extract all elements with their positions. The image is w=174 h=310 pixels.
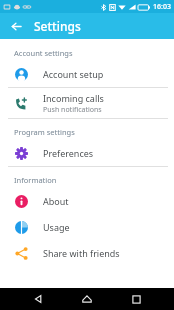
button[interactable]: Back	[6, 16, 26, 36]
button[interactable]: Back	[27, 288, 49, 310]
button[interactable]: Home	[76, 288, 98, 310]
staticText: Settings	[34, 18, 81, 34]
button[interactable]: Incoming calls	[0, 88, 174, 118]
staticText: Program settings	[14, 127, 75, 137]
staticText: Share with friends	[43, 247, 120, 259]
staticText: Account setup	[43, 68, 104, 80]
button[interactable]: Recents	[125, 288, 147, 310]
button[interactable]: About	[0, 188, 174, 214]
staticText: Usage	[43, 221, 70, 233]
button[interactable]: Usage	[0, 214, 174, 240]
staticText: Preferences	[43, 147, 94, 159]
staticText: Account settings	[14, 48, 73, 58]
button[interactable]: Preferences	[0, 140, 174, 166]
staticText: 16:03	[153, 2, 171, 12]
staticText: Incoming calls	[43, 92, 104, 104]
staticText: About	[43, 195, 69, 207]
staticText: Information	[14, 175, 57, 185]
button[interactable]: Share with friends	[0, 240, 174, 266]
button[interactable]: Account setup	[0, 61, 174, 87]
staticText: Push notifications	[43, 105, 102, 115]
